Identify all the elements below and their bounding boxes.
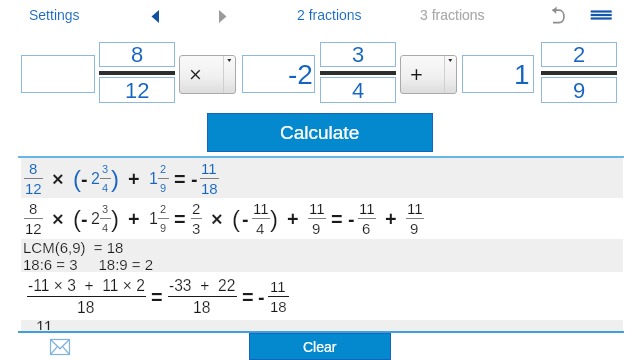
- staticText: 11: [36, 319, 53, 330]
- button[interactable]: fraction 2 numerator: [320, 42, 396, 67]
- staticText: 3 fractions: [420, 7, 485, 23]
- button[interactable]: Settings: [23, 3, 86, 27]
- staticText: -: [81, 168, 88, 190]
- button[interactable]: whole number 3: [462, 55, 534, 93]
- staticText: 9: [410, 220, 419, 237]
- button[interactable]: fraction 2 denominator: [320, 77, 396, 103]
- staticText: 1: [149, 210, 158, 228]
- staticText: 8: [29, 200, 38, 217]
- staticText: Clear: [303, 339, 337, 355]
- button[interactable]: whole number 2: [242, 55, 315, 93]
- button[interactable]: operation plus: [400, 55, 457, 94]
- staticText: (: [232, 205, 240, 232]
- staticText: 4: [256, 220, 265, 237]
- staticText: 2: [91, 210, 100, 228]
- staticText: 18: [77, 299, 95, 316]
- button[interactable]: -11 × 3 + 11 × 2: [21, 272, 623, 320]
- staticText: -33 + 22: [169, 277, 236, 294]
- staticText: 8: [29, 160, 38, 177]
- staticText: 18:6 = 3 18:9 = 2: [23, 256, 154, 272]
- staticText: 4: [352, 78, 365, 103]
- button[interactable]: Calculate: [207, 113, 433, 152]
- button[interactable]: 8: [21, 158, 623, 198]
- staticText: 11: [270, 278, 286, 295]
- staticText: 4: [102, 222, 109, 234]
- staticText: =: [174, 208, 186, 230]
- staticText: ×: [189, 62, 202, 87]
- staticText: ): [270, 205, 278, 232]
- staticText: 9: [312, 220, 321, 237]
- staticText: 11: [407, 200, 423, 217]
- staticText: 2: [573, 42, 586, 67]
- button[interactable]: 2 fractions: [291, 3, 368, 27]
- staticText: 3: [102, 203, 109, 215]
- staticText: Calculate: [280, 122, 360, 143]
- staticText: =: [331, 208, 343, 230]
- button[interactable]: fraction 1 denominator: [99, 77, 175, 103]
- staticText: 2: [160, 163, 167, 175]
- staticText: 6: [362, 220, 371, 237]
- staticText: Settings: [29, 7, 80, 23]
- staticText: -11 × 3 + 11 × 2: [28, 277, 145, 294]
- staticText: 2: [192, 200, 201, 217]
- staticText: (: [73, 205, 81, 232]
- button[interactable]: fraction 1 numerator: [99, 42, 175, 67]
- button[interactable]: 3 fractions: [414, 3, 491, 27]
- button[interactable]: operation multiply: [179, 55, 236, 94]
- button[interactable]: fraction 3 numerator: [541, 42, 617, 67]
- staticText: 2 fractions: [297, 7, 362, 23]
- staticText: =: [151, 286, 163, 308]
- staticText: -: [348, 208, 355, 230]
- staticText: =: [174, 168, 186, 190]
- staticText: 9: [573, 78, 586, 103]
- staticText: 1: [149, 170, 158, 188]
- button[interactable]: Next: [212, 5, 234, 27]
- staticText: -: [191, 168, 198, 190]
- staticText: +: [410, 62, 423, 87]
- staticText: 2: [160, 203, 167, 215]
- staticText: 12: [25, 180, 42, 197]
- button[interactable]: Previous: [146, 5, 168, 27]
- staticText: ×: [52, 208, 64, 230]
- staticText: ×: [211, 208, 223, 230]
- staticText: -2: [288, 59, 313, 90]
- staticText: 18: [193, 299, 211, 316]
- staticText: ×: [52, 168, 64, 190]
- staticText: 9: [160, 182, 167, 194]
- staticText: 12: [125, 78, 150, 103]
- staticText: 18: [201, 180, 218, 197]
- staticText: 4: [102, 182, 109, 194]
- button[interactable]: 8: [21, 198, 623, 239]
- staticText: +: [128, 168, 140, 190]
- button[interactable]: 11: [21, 320, 623, 331]
- staticText: ): [111, 205, 119, 232]
- staticText: 11: [309, 200, 325, 217]
- staticText: 11: [359, 200, 375, 217]
- button[interactable]: Email: [50, 339, 70, 355]
- staticText: ): [111, 165, 119, 192]
- staticText: -: [81, 208, 88, 230]
- staticText: (: [73, 165, 81, 192]
- staticText: +: [287, 208, 299, 230]
- staticText: 3: [102, 163, 109, 175]
- button[interactable]: LCM(6,9) = 18: [21, 239, 623, 272]
- staticText: LCM(6,9) = 18: [23, 239, 124, 256]
- staticText: 9: [160, 222, 167, 234]
- button[interactable]: Undo: [545, 4, 571, 28]
- button[interactable]: whole number 1: [21, 55, 95, 93]
- button[interactable]: fraction 3 denominator: [541, 77, 617, 103]
- staticText: -: [242, 208, 249, 230]
- staticText: 11: [201, 160, 217, 177]
- staticText: 8: [131, 42, 144, 67]
- staticText: 3: [192, 220, 201, 237]
- staticText: =: [242, 286, 254, 308]
- staticText: 1: [514, 59, 530, 90]
- staticText: 3: [352, 42, 365, 67]
- staticText: +: [128, 208, 140, 230]
- button[interactable]: Clear: [249, 333, 391, 360]
- staticText: +: [385, 208, 397, 230]
- button[interactable]: Menu: [588, 5, 614, 23]
- staticText: -: [258, 286, 265, 308]
- staticText: 12: [25, 220, 42, 237]
- staticText: 18: [270, 298, 287, 315]
